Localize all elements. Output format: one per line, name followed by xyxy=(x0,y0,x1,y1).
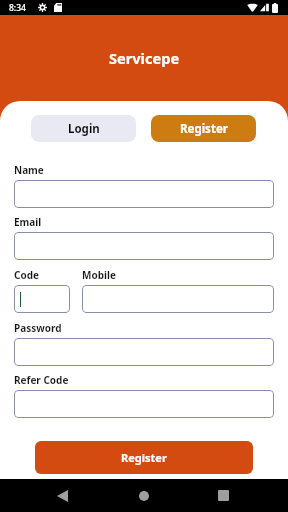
button[interactable] xyxy=(14,180,274,208)
staticText: Servicepe xyxy=(109,48,180,68)
staticText: Mobile xyxy=(82,268,116,282)
button[interactable]: Register xyxy=(151,115,256,142)
button[interactable]: Home xyxy=(123,479,164,512)
button[interactable] xyxy=(14,338,274,366)
button[interactable] xyxy=(82,285,274,313)
button[interactable] xyxy=(14,232,274,260)
staticText: Email xyxy=(14,215,42,229)
button[interactable]: Login xyxy=(31,115,136,142)
staticText: Register xyxy=(121,450,167,465)
button[interactable]: Recents xyxy=(203,479,244,512)
button[interactable]: Back xyxy=(42,479,83,512)
staticText: Code xyxy=(14,268,39,282)
staticText: 8:34 xyxy=(9,2,26,14)
button[interactable]: Register xyxy=(35,441,253,474)
staticText: Name xyxy=(14,163,44,177)
button[interactable] xyxy=(14,285,70,313)
staticText: Register xyxy=(180,121,228,137)
staticText: Refer Code xyxy=(14,373,69,387)
staticText: Password xyxy=(14,321,62,335)
staticText: Login xyxy=(68,121,100,137)
button[interactable] xyxy=(14,390,274,418)
